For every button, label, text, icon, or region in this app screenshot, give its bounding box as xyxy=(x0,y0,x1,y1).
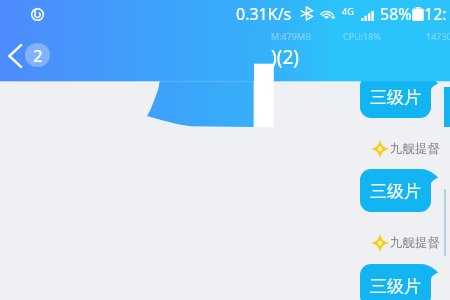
button[interactable]: 三级片 xyxy=(360,75,431,118)
button[interactable]: 三级片 xyxy=(360,169,431,212)
button[interactable]: Music xyxy=(31,8,44,21)
staticText: 三级片 xyxy=(370,87,421,108)
button[interactable]: 九舰提督 xyxy=(371,234,439,252)
button[interactable]: Back xyxy=(6,43,25,68)
staticText: 58% xyxy=(380,3,412,25)
button[interactable]: 三级片 xyxy=(360,264,431,300)
staticText: 九舰提督 xyxy=(390,141,440,157)
staticText: 三级片 xyxy=(370,181,421,202)
button[interactable]: 2 xyxy=(25,43,50,67)
staticText: 0.31K/s xyxy=(236,3,292,25)
staticText: )(2) xyxy=(271,44,299,70)
staticText: 4G xyxy=(342,5,354,17)
staticText: M:479MB xyxy=(271,30,312,42)
staticText: CPU:18% xyxy=(343,30,381,42)
staticText: 2 xyxy=(33,44,43,67)
staticText: 12: xyxy=(424,3,447,25)
staticText: 14730 xyxy=(426,30,450,42)
button[interactable]: 九舰提督 xyxy=(371,140,439,158)
staticText: 九舰提督 xyxy=(390,235,440,251)
staticText: 三级片 xyxy=(370,276,421,297)
